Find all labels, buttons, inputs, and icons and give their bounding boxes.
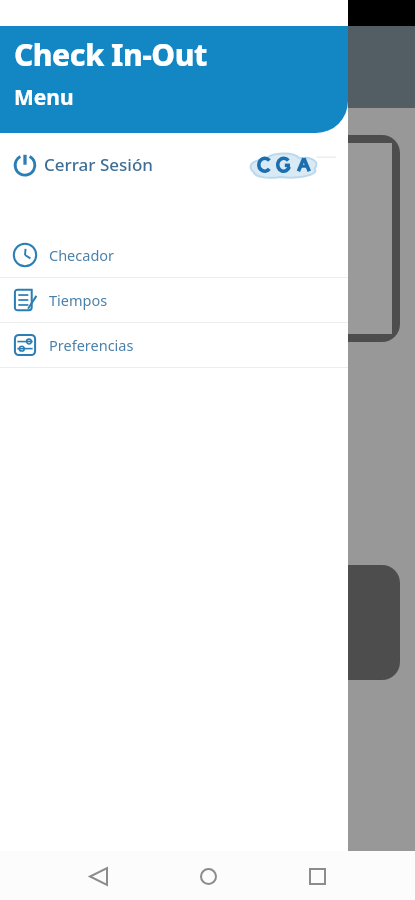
button[interactable]: Tiempos — [0, 278, 348, 322]
staticText: Preferencias — [49, 335, 134, 355]
staticText: Cerrar Sesión — [44, 153, 153, 176]
button[interactable]: Preferencias — [0, 323, 348, 367]
button[interactable]: Cerrar Sesión — [0, 133, 348, 195]
button[interactable]: Back — [78, 856, 118, 896]
button[interactable]: Checador — [0, 233, 348, 277]
button[interactable]: Recent apps — [297, 856, 337, 896]
staticText: Menu — [14, 83, 74, 112]
button[interactable]: Home — [188, 856, 228, 896]
staticText: Checador — [49, 245, 115, 265]
staticText: Check In-Out — [14, 34, 207, 75]
staticText: Tiempos — [49, 290, 108, 310]
